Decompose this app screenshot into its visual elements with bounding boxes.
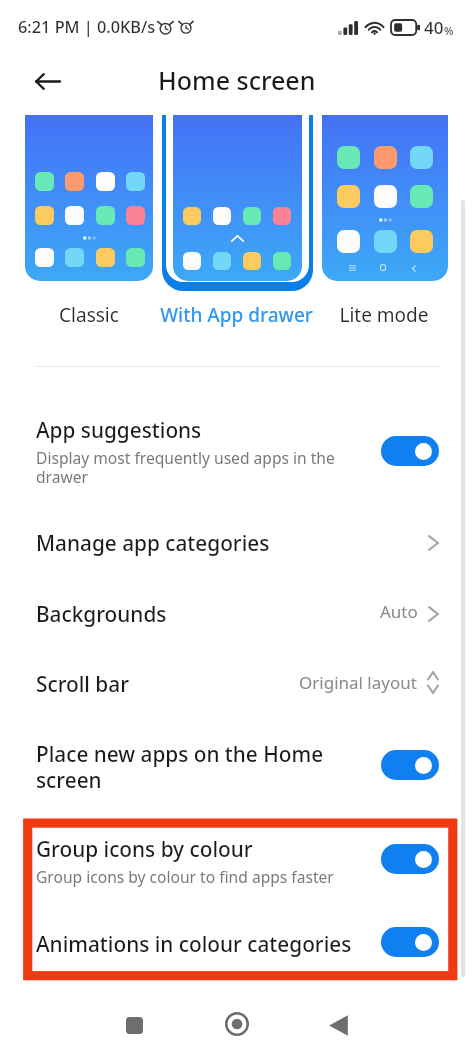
button[interactable]: Place new apps on the Home screen [0, 728, 474, 802]
staticText: Group icons by colour to find apps faste… [36, 866, 334, 887]
button[interactable] [322, 115, 448, 281]
button[interactable]: Home [213, 1000, 261, 1048]
staticText: Display most frequently used apps in the… [36, 447, 340, 487]
button[interactable]: Group icons by colour [0, 823, 474, 897]
staticText: 40 [424, 16, 444, 39]
staticText: Auto [380, 600, 418, 623]
staticText: Home screen [158, 63, 316, 97]
staticText: Backgrounds [36, 600, 167, 628]
button[interactable]: Classic [9, 302, 169, 332]
button[interactable] [162, 115, 313, 291]
staticText: Lite mode [339, 302, 429, 328]
button[interactable]: App suggestions [0, 404, 474, 478]
button[interactable]: Recents [110, 1001, 158, 1049]
button[interactable]: Lite mode [304, 302, 464, 332]
button[interactable]: Backgrounds [0, 588, 474, 640]
staticText: With App drawer [160, 302, 313, 328]
staticText: Scroll bar [36, 670, 129, 698]
button[interactable]: Back [23, 57, 71, 105]
staticText: % [444, 23, 454, 38]
staticText: Group icons by colour [36, 835, 253, 863]
staticText: Manage app categories [36, 529, 270, 557]
button[interactable]: Scroll bar [0, 658, 474, 710]
staticText: Place new apps on the Home screen [36, 740, 336, 794]
staticText: Original layout [299, 671, 417, 694]
staticText: Classic [59, 302, 119, 328]
staticText: App suggestions [36, 416, 202, 444]
button[interactable]: With App drawer [156, 302, 316, 332]
button[interactable]: Animations in colour categories [381, 927, 439, 957]
button[interactable]: Group icons by colour [381, 844, 439, 874]
button[interactable]: Place new apps on the Home screen [381, 750, 439, 780]
button[interactable]: Animations in colour categories [0, 918, 474, 970]
staticText: Animations in colour categories [36, 930, 352, 958]
button[interactable]: Manage app categories [0, 517, 474, 569]
staticText: 6:21 PM | 0.0KB/s [18, 16, 156, 38]
button[interactable] [25, 115, 153, 281]
button[interactable]: Back [315, 1001, 363, 1049]
button[interactable]: App suggestions [381, 436, 439, 466]
